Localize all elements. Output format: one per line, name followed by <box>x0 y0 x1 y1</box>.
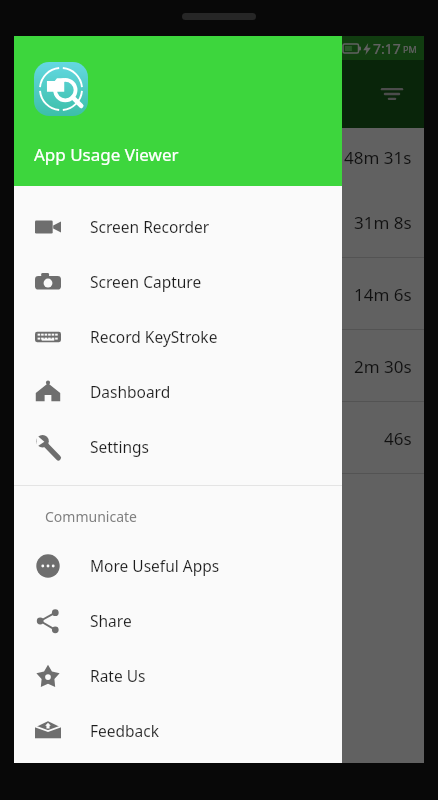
staticText: 2m 30s <box>354 355 412 378</box>
button[interactable]: Feedback <box>14 703 342 758</box>
button[interactable]: Screen Capture <box>14 254 342 309</box>
staticText: Record KeyStroke <box>90 326 218 347</box>
button[interactable]: 46s <box>14 402 424 474</box>
button[interactable]: Settings <box>14 419 342 474</box>
staticText: Dashboard <box>90 381 171 402</box>
staticText: Screen Capture <box>90 271 202 292</box>
button[interactable]: 31m 8s <box>14 186 424 258</box>
staticText: 14m 6s <box>354 283 412 306</box>
button[interactable]: More Useful Apps <box>14 538 342 593</box>
button[interactable]: 2m 30s <box>14 330 424 402</box>
staticText: Share <box>90 610 132 631</box>
staticText: PM <box>403 43 417 55</box>
staticText: App Usage Viewer <box>34 143 179 166</box>
staticText: Screen Recorder <box>90 216 210 237</box>
button[interactable]: Filter <box>372 74 412 114</box>
staticText: 31m 8s <box>354 211 412 234</box>
staticText: 7:17 <box>373 39 401 58</box>
button[interactable]: Share <box>14 593 342 648</box>
staticText: 46s <box>384 427 412 450</box>
button[interactable]: 14m 6s <box>14 258 424 330</box>
button[interactable]: Rate Us <box>14 648 342 703</box>
button[interactable]: Record KeyStroke <box>14 309 342 364</box>
staticText: Settings <box>90 436 149 457</box>
staticText: Communicate <box>45 507 137 526</box>
staticText: Rate Us <box>90 665 146 686</box>
button[interactable]: Screen Recorder <box>14 199 342 254</box>
staticText: Feedback <box>90 720 160 741</box>
button[interactable]: 48m 31s <box>14 128 424 186</box>
staticText: 48m 31s <box>344 146 412 169</box>
button[interactable]: Dashboard <box>14 364 342 419</box>
staticText: More Useful Apps <box>90 555 220 576</box>
